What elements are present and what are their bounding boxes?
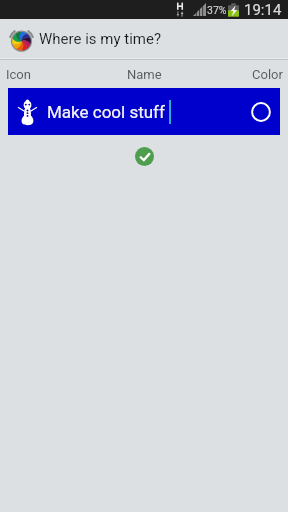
button[interactable]: Color <box>242 93 280 131</box>
button[interactable]: Make cool stuff <box>8 88 280 135</box>
staticText: 37% <box>207 4 227 16</box>
staticText: Make cool stuff <box>47 102 165 122</box>
staticText: Icon <box>6 67 31 82</box>
staticText: Where is my time? <box>39 30 161 48</box>
button[interactable]: Confirm <box>135 147 154 166</box>
staticText: Name <box>127 67 162 82</box>
staticText: Color <box>252 67 283 82</box>
staticText: 19:14 <box>244 1 282 19</box>
